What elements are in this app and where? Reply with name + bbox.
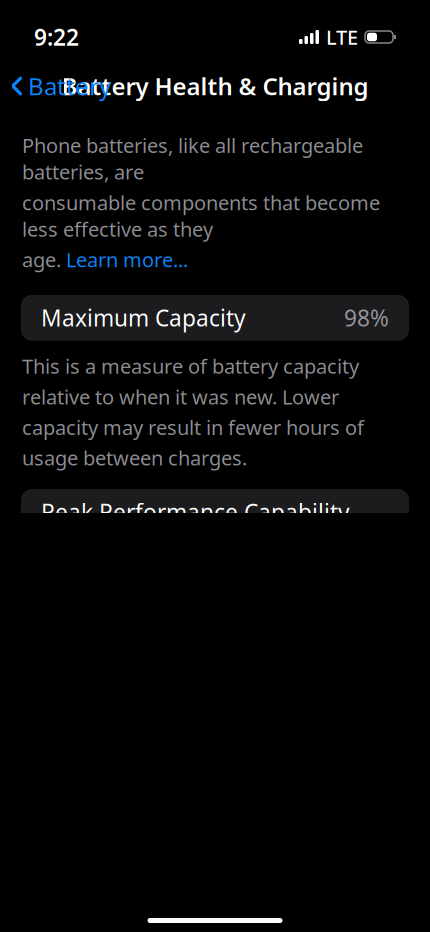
staticText: consumable components that become less e…	[22, 189, 380, 242]
staticText: LTE	[326, 24, 358, 50]
button[interactable]: Battery	[0, 64, 119, 108]
staticText: 98%	[344, 303, 389, 333]
staticText: This is a measure of battery capacity re…	[22, 353, 364, 471]
button[interactable]: Learn more...	[66, 246, 188, 273]
staticText: age.	[22, 246, 66, 273]
staticText: 9:22	[34, 22, 79, 52]
staticText: Phone batteries, like all rechargeable b…	[22, 132, 363, 185]
staticText: Peak Performance Capability	[41, 497, 350, 527]
staticText: Learn more...	[66, 246, 188, 273]
button[interactable]: Peak Performance Capability	[21, 489, 409, 535]
staticText: Battery Health & Charging	[61, 70, 368, 102]
button[interactable]: Maximum Capacity	[21, 295, 409, 341]
staticText: Maximum Capacity	[41, 303, 246, 333]
staticText: Battery	[28, 70, 111, 102]
